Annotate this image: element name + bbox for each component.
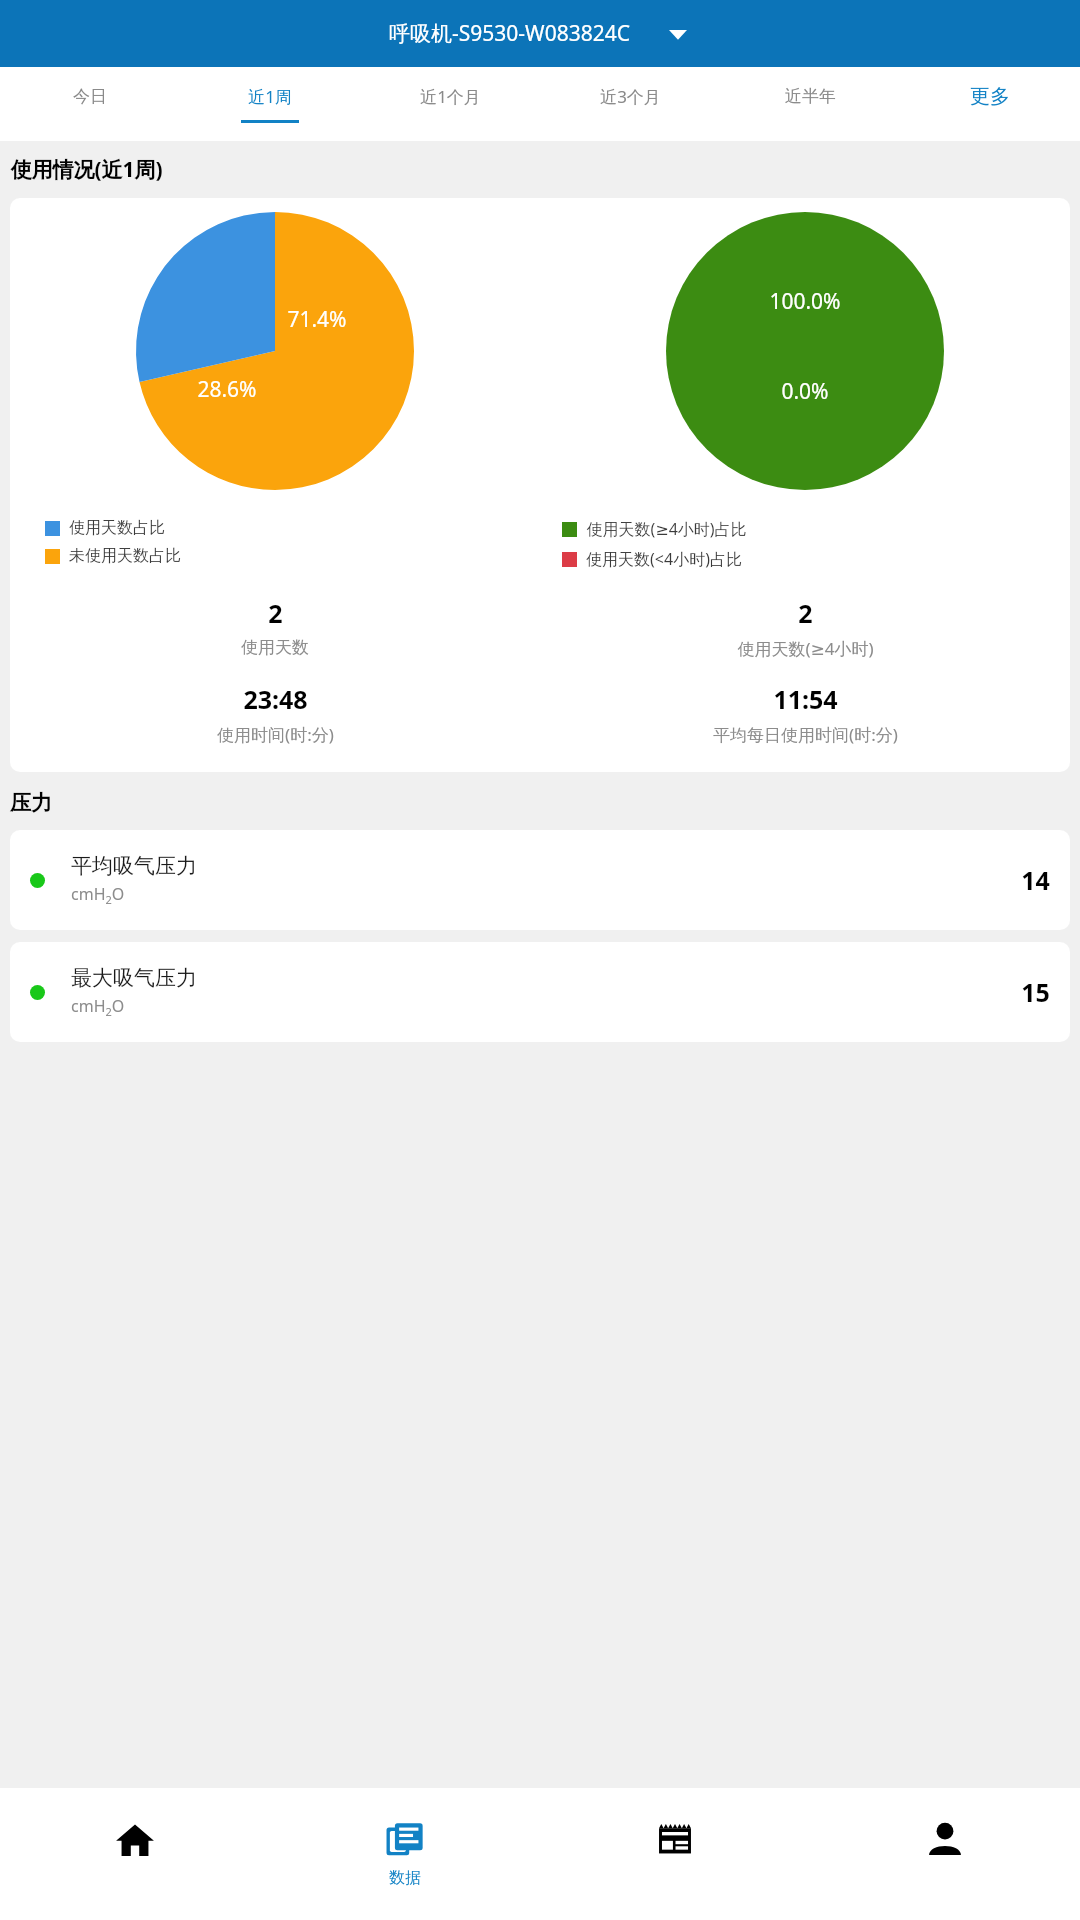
staticText: 未使用天数占比 [69,546,181,566]
button[interactable]: Profile [810,1788,1080,1920]
button[interactable]: 平均吸气压力 [10,830,1070,930]
button[interactable]: 近1周 [180,67,360,141]
button[interactable]: 数据 [270,1788,540,1920]
button[interactable]: 今日 [0,67,180,141]
button[interactable]: 71.4% [10,198,1070,772]
button[interactable]: Reports [540,1788,810,1920]
staticText: 0.0% [781,377,829,406]
staticText: cmH2O [71,995,125,1019]
button[interactable]: 近3个月 [540,67,720,141]
button[interactable]: 呼吸机-S9530-W083824C [389,19,630,48]
button[interactable]: Select device [664,20,692,48]
staticText: 14 [1021,863,1050,897]
staticText: 今日 [73,86,107,107]
staticText: 近3个月 [600,85,661,108]
staticText: 使用天数 [241,637,309,658]
staticText: 11:54 [773,682,838,716]
button[interactable]: Home [0,1788,270,1920]
staticText: 最大吸气压力 [71,965,197,991]
button[interactable]: 更多 [900,67,1080,141]
staticText: 更多 [970,84,1010,109]
staticText: 使用时间(时:分) [217,723,334,746]
staticText: 15 [1021,975,1050,1009]
staticText: 使用天数占比 [69,518,165,538]
staticText: 数据 [389,1868,421,1888]
staticText: 100.0% [769,287,841,316]
staticText: cmH2O [71,883,125,907]
staticText: 近1个月 [420,85,481,108]
button[interactable]: 近半年 [720,67,900,141]
staticText: 2 [798,596,813,630]
staticText: 使用情况(近1周) [10,155,163,184]
staticText: 使用天数(<4小时)占比 [586,548,742,570]
button[interactable]: 近1个月 [360,67,540,141]
staticText: 2 [268,596,283,630]
staticText: 23:48 [243,682,308,716]
staticText: 28.6% [197,375,257,404]
staticText: 近半年 [785,86,836,107]
staticText: 近1周 [248,85,292,108]
staticText: 71.4% [287,305,347,334]
staticText: 使用天数(≥4小时) [737,637,874,660]
button[interactable]: 最大吸气压力 [10,942,1070,1042]
staticText: 使用天数(≥4小时)占比 [586,518,747,540]
staticText: 平均吸气压力 [71,853,197,879]
staticText: 平均每日使用时间(时:分) [713,723,898,746]
staticText: 压力 [10,790,52,816]
staticText: 呼吸机-S9530-W083824C [389,19,630,48]
